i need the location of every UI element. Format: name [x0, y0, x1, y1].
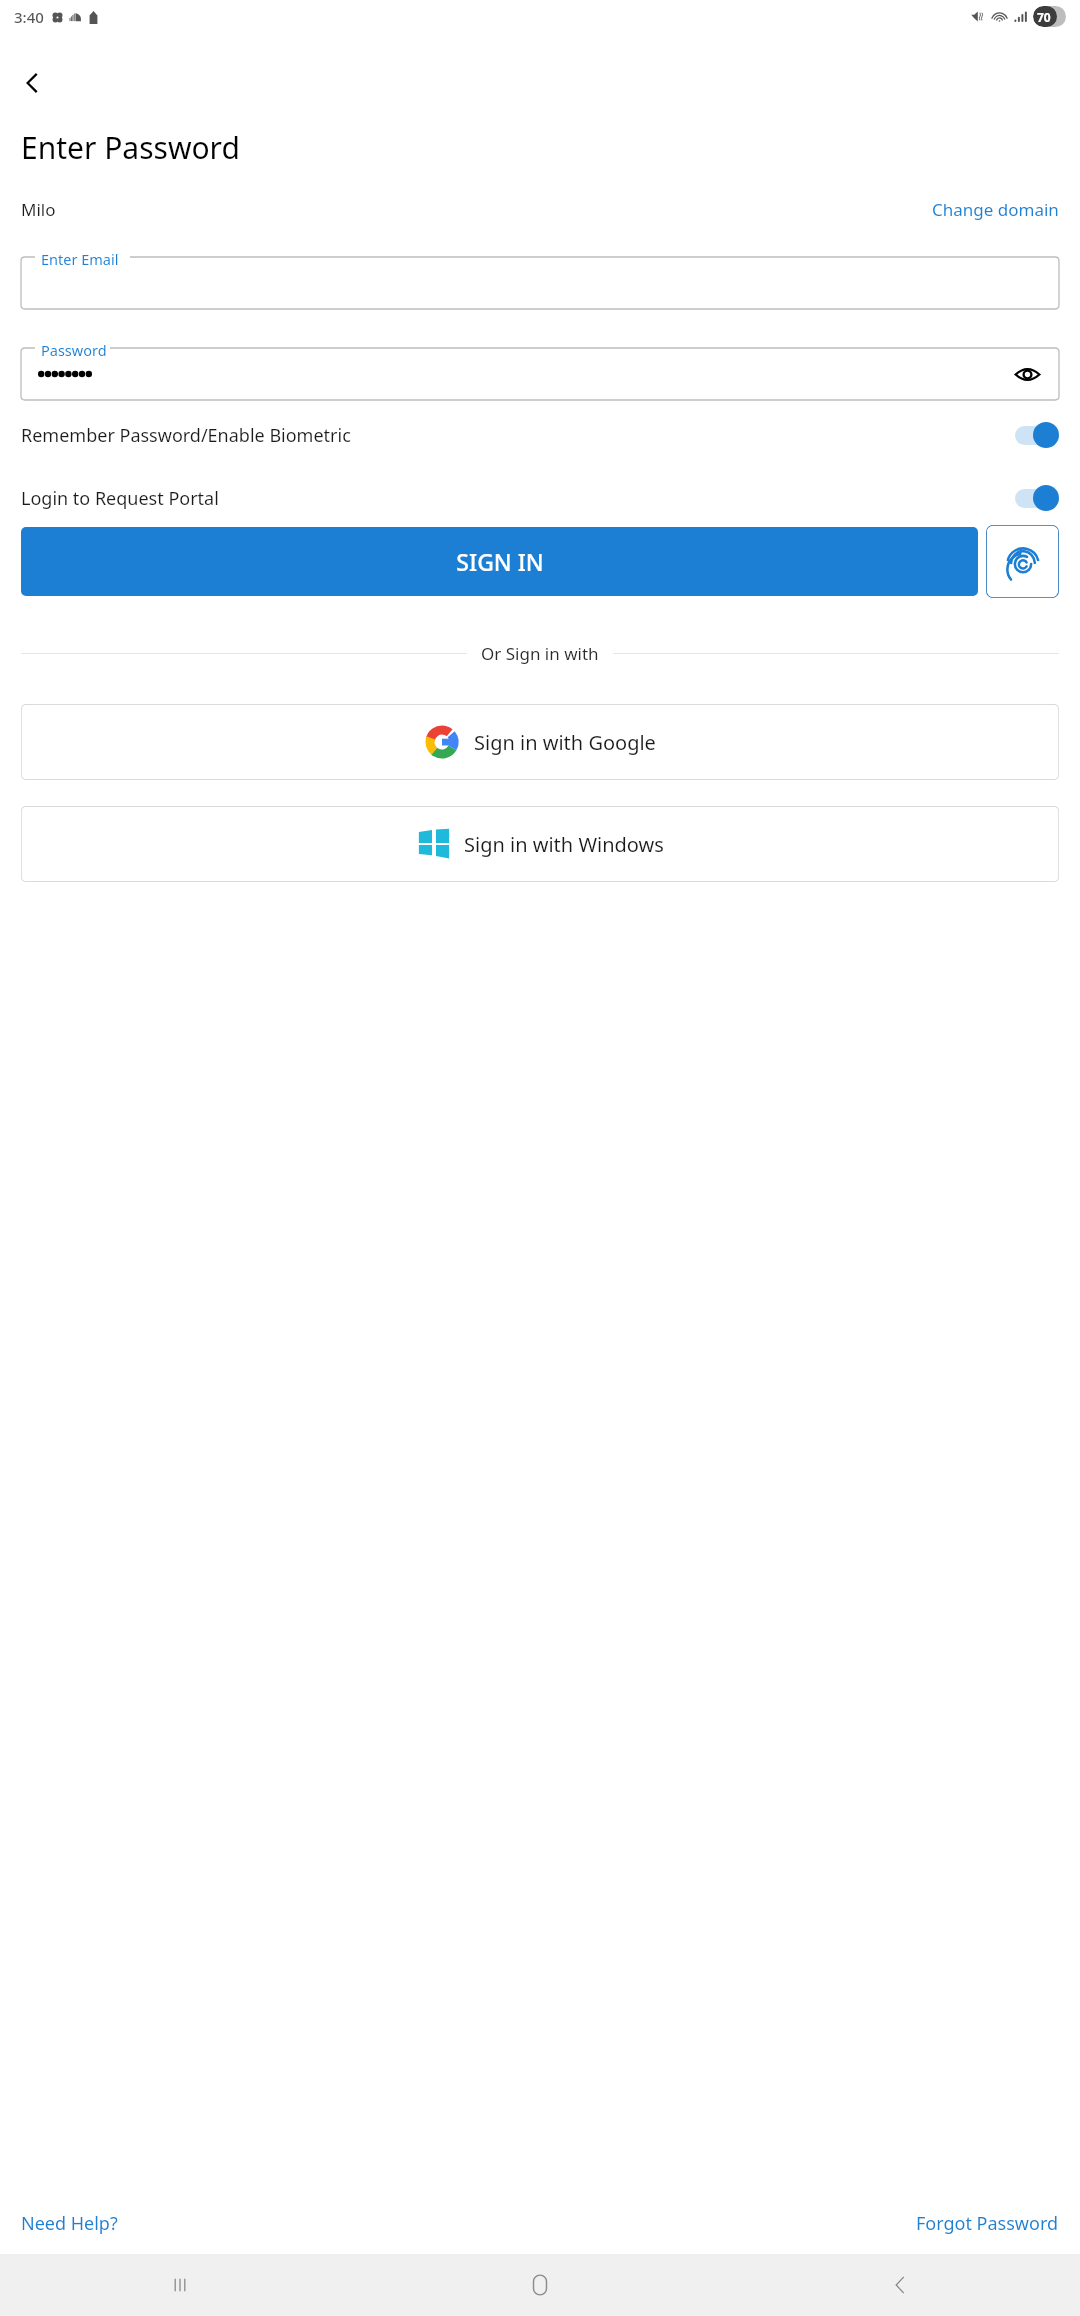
button[interactable]: Change domain	[932, 198, 1059, 221]
staticText: Or Sign in with	[481, 642, 599, 665]
button[interactable]: Home	[360, 2254, 720, 2316]
staticText: Forgot Password	[916, 2211, 1059, 2236]
button[interactable]	[21, 257, 1059, 309]
button[interactable]: Sign in with fingerprint	[986, 525, 1059, 598]
staticText: 3:40	[14, 7, 44, 27]
staticText: Sign in with Windows	[464, 831, 664, 858]
staticText: Sign in with Google	[474, 729, 656, 756]
staticText: Change domain	[932, 198, 1059, 221]
button[interactable]: Forgot Password	[916, 2211, 1059, 2236]
button[interactable]: Show password	[21, 348, 1059, 400]
button[interactable]: Remember Password/Enable Biometric	[21, 413, 1059, 457]
button[interactable]: Sign in with Windows	[21, 806, 1059, 882]
staticText: Enter Email	[41, 249, 119, 269]
staticText: SIGN IN	[456, 546, 544, 577]
staticText: Password	[41, 340, 107, 360]
button[interactable]: Show password	[1007, 354, 1047, 394]
staticText: 70	[1037, 9, 1051, 25]
button[interactable]: Need Help?	[21, 2211, 118, 2236]
button[interactable]: Back	[10, 61, 54, 105]
button[interactable]: Login to Request Portal	[21, 476, 1059, 520]
staticText: Enter Password	[21, 127, 240, 168]
staticText: Need Help?	[21, 2211, 118, 2236]
button[interactable]: SIGN IN	[21, 527, 978, 596]
button[interactable]: Back	[720, 2254, 1080, 2316]
button[interactable]: Recent apps	[0, 2254, 360, 2316]
button[interactable]: Sign in with Google	[21, 704, 1059, 780]
button[interactable]: Milo	[21, 198, 56, 221]
staticText: Remember Password/Enable Biometric	[21, 423, 351, 448]
staticText: Login to Request Portal	[21, 486, 219, 511]
